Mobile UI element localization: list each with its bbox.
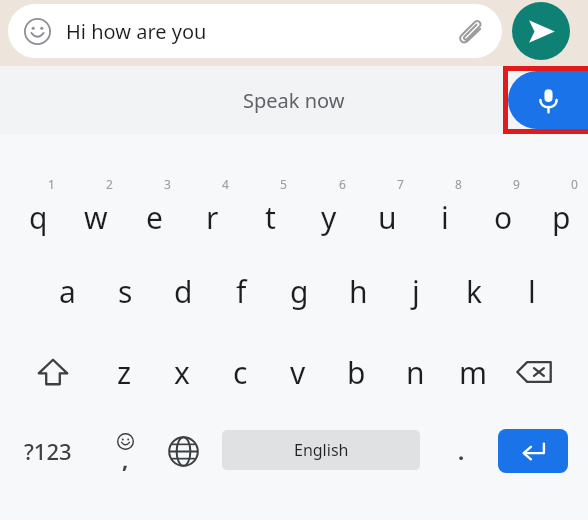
button[interactable]: j: [387, 258, 445, 324]
button[interactable]: c: [211, 339, 269, 405]
button[interactable]: Send: [512, 2, 570, 60]
staticText: t: [265, 197, 276, 238]
staticText: 0: [571, 176, 578, 192]
button[interactable]: f: [212, 258, 270, 324]
staticText: 2: [106, 176, 113, 192]
staticText: 8: [455, 176, 462, 192]
staticText: b: [347, 352, 366, 393]
button[interactable]: 2: [67, 176, 125, 242]
staticText: ,: [122, 444, 129, 474]
button[interactable]: .: [436, 420, 486, 482]
button[interactable]: Backspace: [503, 339, 565, 405]
button[interactable]: Change language: [155, 420, 211, 482]
button[interactable]: z: [95, 339, 153, 405]
button[interactable]: d: [154, 258, 212, 324]
staticText: i: [441, 197, 449, 238]
staticText: o: [494, 197, 513, 238]
staticText: k: [466, 271, 483, 312]
staticText: 4: [222, 176, 229, 192]
button[interactable]: g: [270, 258, 328, 324]
staticText: Speak now: [243, 87, 345, 114]
staticText: English: [294, 439, 349, 461]
button[interactable]: 0: [532, 176, 588, 242]
staticText: 5: [280, 176, 287, 192]
button[interactable]: 9: [474, 176, 532, 242]
button[interactable]: Emoji: [8, 4, 502, 58]
button[interactable]: 8: [416, 176, 474, 242]
button[interactable]: x: [153, 339, 211, 405]
button[interactable]: English: [222, 430, 420, 470]
button[interactable]: m: [444, 339, 502, 405]
button[interactable]: k: [445, 258, 503, 324]
staticText: 6: [339, 176, 346, 192]
button[interactable]: ?123: [10, 420, 86, 482]
button[interactable]: s: [96, 258, 154, 324]
staticText: g: [290, 271, 309, 312]
staticText: m: [459, 352, 488, 393]
button[interactable]: n: [386, 339, 444, 405]
staticText: z: [117, 352, 132, 393]
button[interactable]: 5: [241, 176, 299, 242]
staticText: v: [290, 352, 306, 393]
staticText: .: [458, 436, 465, 466]
button[interactable]: l: [503, 258, 561, 324]
button[interactable]: 6: [300, 176, 358, 242]
button[interactable]: Emoji: [22, 16, 52, 46]
staticText: d: [174, 271, 193, 312]
staticText: r: [206, 197, 219, 238]
staticText: Hi how are you: [66, 18, 207, 45]
button[interactable]: Voice input: [508, 71, 588, 129]
staticText: q: [29, 197, 48, 238]
button[interactable]: h: [329, 258, 387, 324]
button[interactable]: Attach: [454, 14, 488, 48]
staticText: a: [59, 271, 76, 312]
staticText: n: [406, 352, 425, 393]
staticText: f: [236, 271, 247, 312]
staticText: 7: [397, 176, 404, 192]
staticText: c: [233, 352, 248, 393]
staticText: ?123: [24, 436, 72, 466]
staticText: 1: [48, 176, 55, 192]
staticText: w: [84, 197, 108, 238]
staticText: u: [378, 197, 397, 238]
staticText: y: [321, 197, 337, 238]
button[interactable]: b: [327, 339, 385, 405]
button[interactable]: Shift: [24, 339, 82, 405]
staticText: 3: [164, 176, 171, 192]
button[interactable]: 1: [9, 176, 67, 242]
staticText: h: [349, 271, 368, 312]
staticText: l: [528, 271, 536, 312]
button[interactable]: Enter: [498, 429, 568, 473]
button[interactable]: a: [38, 258, 96, 324]
button[interactable]: v: [269, 339, 327, 405]
staticText: s: [118, 271, 133, 312]
staticText: e: [146, 197, 163, 238]
button[interactable]: 3: [125, 176, 183, 242]
staticText: 9: [513, 176, 520, 192]
staticText: x: [174, 352, 190, 393]
button[interactable]: 4: [183, 176, 241, 242]
button[interactable]: Emoji: [98, 420, 152, 482]
button[interactable]: 7: [358, 176, 416, 242]
staticText: j: [412, 271, 420, 312]
staticText: p: [552, 197, 571, 238]
